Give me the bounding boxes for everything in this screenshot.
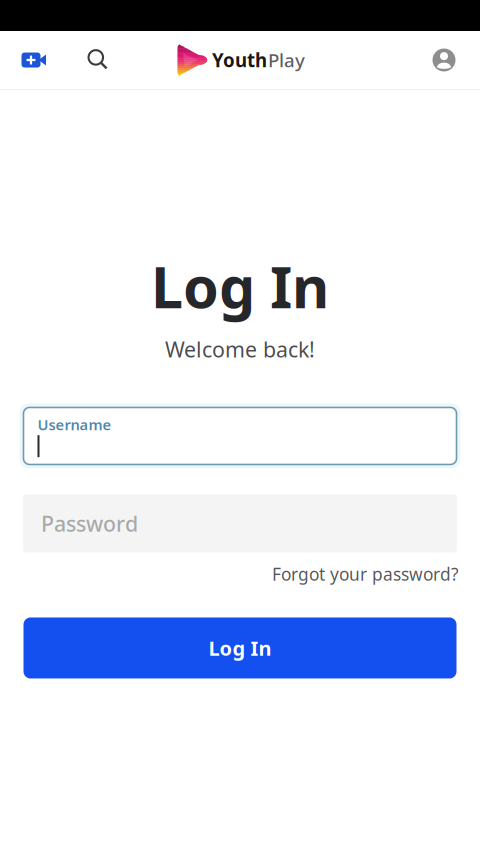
staticText: Play: [268, 48, 305, 72]
button[interactable]: Username: [19, 403, 460, 468]
staticText: Log In: [208, 635, 271, 661]
button[interactable]: Account: [420, 36, 468, 84]
button[interactable]: Create video: [8, 36, 60, 84]
staticText: Password: [41, 509, 138, 538]
staticText: Log In: [151, 248, 329, 324]
button[interactable]: Password: [23, 494, 457, 552]
button[interactable]: Forgot your password?: [272, 562, 459, 585]
button[interactable]: Log In: [23, 617, 456, 678]
staticText: Welcome back!: [165, 335, 315, 363]
staticText: Forgot your password?: [272, 562, 459, 585]
staticText: Username: [37, 415, 111, 434]
button[interactable]: Search: [60, 36, 136, 84]
staticText: Youth: [212, 48, 267, 72]
